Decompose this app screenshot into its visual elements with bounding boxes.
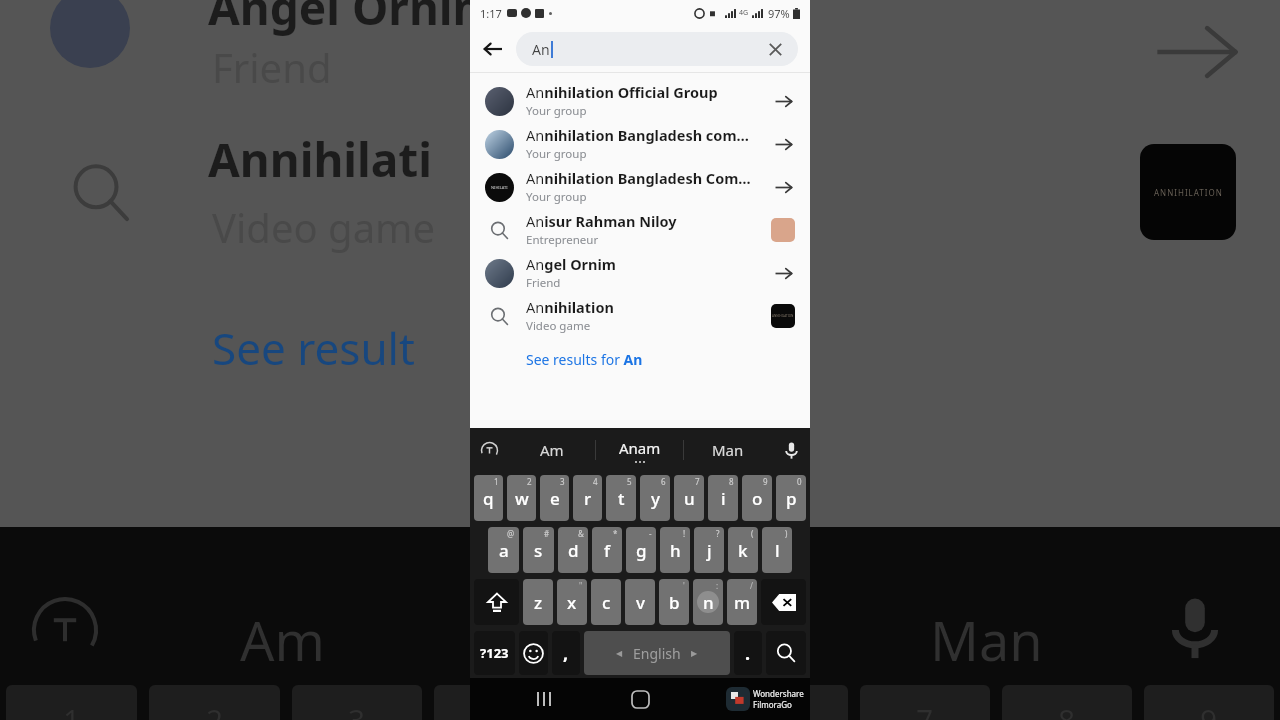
staticText: Man <box>712 440 744 460</box>
staticText: FilmoraGo <box>753 699 792 710</box>
button[interactable]: w <box>507 475 536 521</box>
button[interactable]: r <box>573 475 602 521</box>
staticText: An <box>532 40 550 59</box>
button[interactable]: k <box>728 527 758 573</box>
staticText: d <box>568 539 579 562</box>
staticText: Annihilation <box>526 297 614 317</box>
button[interactable]: Anisur Rahman Niloy <box>470 208 810 251</box>
staticText: i <box>721 487 726 510</box>
button[interactable]: u <box>674 475 704 521</box>
staticText: ANNIHILATION <box>772 314 794 318</box>
staticText: m <box>734 591 751 614</box>
button[interactable]: , <box>552 631 580 675</box>
button[interactable]: Home <box>620 679 660 719</box>
staticText: Anam <box>619 438 661 458</box>
button[interactable]: y <box>640 475 670 521</box>
staticText: 9 <box>1200 700 1218 720</box>
button[interactable]: v <box>625 579 655 625</box>
staticText: ◀ <box>616 649 623 658</box>
staticText: Video game <box>526 318 591 334</box>
button[interactable]: z <box>523 579 553 625</box>
button[interactable]: Angel Ornim <box>470 251 810 294</box>
staticText: v <box>636 591 645 614</box>
button[interactable]: x <box>557 579 587 625</box>
button[interactable]: See results for An <box>470 337 810 381</box>
staticText: Annihilati <box>208 128 433 191</box>
button[interactable]: An <box>516 32 798 66</box>
button[interactable]: Annihilation <box>470 294 810 337</box>
button[interactable]: f <box>592 527 622 573</box>
staticText: 1:17 <box>480 6 502 21</box>
button[interactable]: e <box>540 475 569 521</box>
button[interactable]: Man <box>684 428 772 472</box>
button[interactable]: NIHILATI <box>470 165 810 208</box>
button[interactable]: l <box>762 527 792 573</box>
button[interactable]: i <box>708 475 738 521</box>
staticText: n <box>703 591 714 614</box>
button[interactable]: o <box>742 475 772 521</box>
button[interactable]: Recents <box>524 679 564 719</box>
button[interactable]: Clear search <box>758 32 792 66</box>
button[interactable]: p <box>776 475 806 521</box>
button[interactable]: c <box>591 579 621 625</box>
button[interactable]: Translate <box>470 428 508 472</box>
staticText: p <box>786 487 797 510</box>
staticText: Angel Ornim <box>526 254 616 274</box>
button[interactable]: h <box>660 527 690 573</box>
staticText: l <box>775 539 780 562</box>
staticText: ' <box>683 580 685 591</box>
staticText: Am <box>540 440 564 460</box>
button[interactable]: Voice input <box>772 428 810 472</box>
staticText: 6 <box>661 476 666 487</box>
button[interactable]: g <box>626 527 656 573</box>
staticText: , <box>563 641 569 666</box>
staticText: 0 <box>797 476 802 487</box>
staticText: & <box>578 528 584 539</box>
button[interactable]: q <box>474 475 503 521</box>
staticText: 3 <box>560 476 565 487</box>
button[interactable]: Emoji <box>519 631 548 675</box>
staticText: * <box>613 528 618 539</box>
staticText: ) <box>785 528 788 539</box>
staticText: z <box>534 591 543 614</box>
button[interactable]: Back <box>470 26 516 72</box>
staticText: u <box>684 487 695 510</box>
staticText: x <box>567 591 577 614</box>
button[interactable]: . <box>734 631 762 675</box>
button[interactable]: n <box>693 579 723 625</box>
button[interactable]: Annihilation Official Group <box>470 79 810 122</box>
button[interactable]: d <box>558 527 588 573</box>
staticText: Entrepreneur <box>526 232 599 248</box>
button[interactable]: j <box>694 527 724 573</box>
button[interactable]: t <box>606 475 636 521</box>
staticText: k <box>738 539 748 562</box>
staticText: Angel Ornim <box>208 0 498 39</box>
staticText: Your group <box>526 189 587 205</box>
button[interactable]: b <box>659 579 689 625</box>
staticText: Anisur Rahman Niloy <box>526 211 677 231</box>
staticText: g <box>636 539 647 562</box>
button[interactable]: Shift <box>474 579 519 625</box>
staticText: 8 <box>1058 700 1076 720</box>
staticText: " <box>579 580 583 591</box>
button[interactable]: Anam <box>596 428 684 472</box>
staticText: ?123 <box>480 644 509 662</box>
button[interactable]: ?123 <box>474 631 515 675</box>
staticText: # <box>544 528 550 539</box>
staticText: y <box>651 487 660 510</box>
button[interactable]: s <box>523 527 554 573</box>
button[interactable]: Annihilation Bangladesh commu… <box>470 122 810 165</box>
staticText: Wondershare <box>753 688 804 699</box>
staticText: a <box>499 539 509 562</box>
button[interactable]: Am <box>508 428 596 472</box>
button[interactable]: Search <box>766 631 806 675</box>
staticText: Video game <box>212 200 436 254</box>
staticText: @ <box>507 528 515 539</box>
staticText: c <box>602 591 611 614</box>
button[interactable]: Backspace <box>761 579 806 625</box>
button[interactable]: a <box>488 527 519 573</box>
button[interactable]: ◀ <box>584 631 730 675</box>
button[interactable]: m <box>727 579 757 625</box>
staticText: t <box>618 487 625 510</box>
staticText: / <box>750 580 753 591</box>
